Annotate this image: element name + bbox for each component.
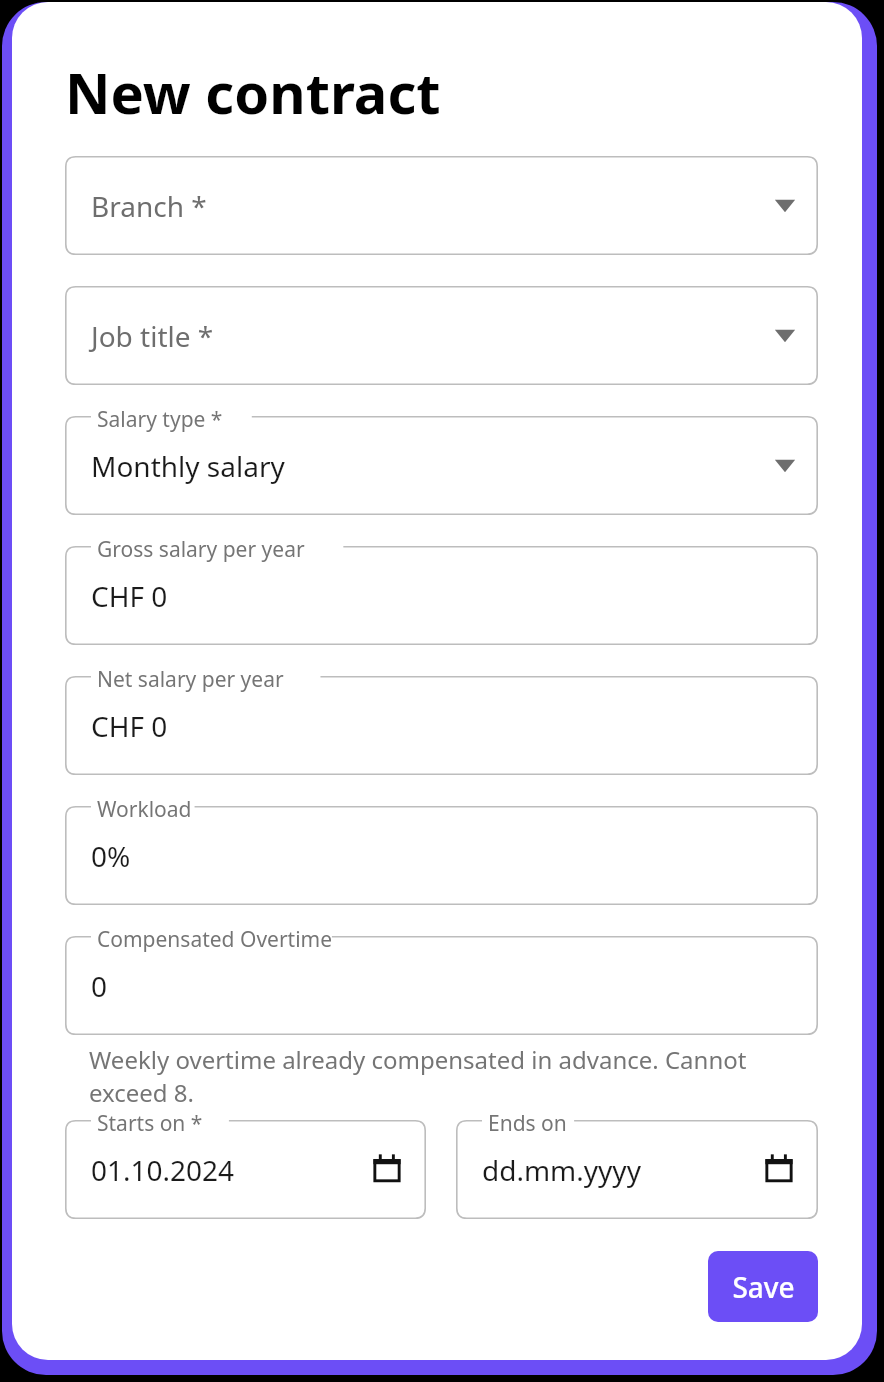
button[interactable]: Workload (65, 806, 818, 905)
staticText: Gross salary per year (97, 535, 305, 564)
button[interactable]: Ends on (456, 1120, 818, 1219)
staticText: 0 (91, 967, 108, 1005)
button[interactable]: Job title * (65, 286, 818, 385)
staticText: Salary type * (97, 405, 223, 434)
staticText: CHF 0 (91, 577, 168, 615)
staticText: Starts on * (97, 1109, 203, 1138)
other: Open dropdown (774, 195, 796, 217)
staticText: Weekly overtime already compensated in a… (89, 1043, 818, 1109)
other: Open dropdown (774, 455, 796, 477)
button[interactable]: Net salary per year (65, 676, 818, 775)
button[interactable]: Gross salary per year (65, 546, 818, 645)
button[interactable]: Branch * (65, 156, 818, 255)
staticText: Monthly salary (91, 447, 285, 485)
button[interactable]: Save (708, 1251, 818, 1322)
staticText: CHF 0 (91, 707, 168, 745)
button[interactable]: Starts on * (65, 1120, 426, 1219)
staticText: Branch * (91, 187, 207, 225)
staticText: 01.10.2024 (91, 1151, 235, 1189)
staticText: Job title * (91, 317, 214, 355)
button[interactable]: Compensated Overtime (65, 936, 818, 1035)
other: Open dropdown (774, 325, 796, 347)
other: Pick date (370, 1153, 404, 1187)
staticText: 0% (91, 837, 131, 875)
staticText: Workload (97, 795, 192, 824)
staticText: Ends on (488, 1109, 567, 1138)
button[interactable]: Salary type * (65, 416, 818, 515)
other: Pick date (762, 1153, 796, 1187)
staticText: Save (732, 1268, 795, 1306)
staticText: Compensated Overtime (97, 925, 333, 954)
staticText: New contract (65, 54, 441, 130)
staticText: Net salary per year (97, 665, 284, 694)
staticText: dd.mm.yyyy (482, 1151, 641, 1189)
